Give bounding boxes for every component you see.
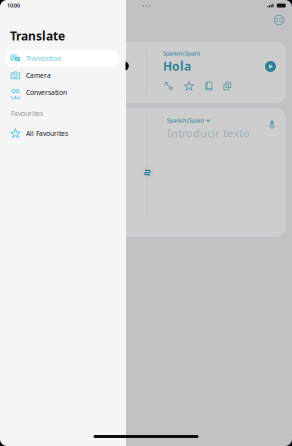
button[interactable]: Add to favourites [184,81,194,91]
button[interactable]: All Favourites [0,125,126,142]
button[interactable]: Swap languages [140,165,155,180]
staticText: All Favourites [26,129,68,138]
button[interactable]: Translation language [274,15,284,25]
button[interactable]: Translation [0,50,126,67]
button[interactable]: Dictate [268,120,276,130]
staticText: Hola [163,58,191,74]
button[interactable]: Conversation [0,84,126,101]
staticText: Conversation [26,88,67,97]
button[interactable]: Dictionary [205,81,213,90]
button[interactable]: Copy [223,81,232,90]
button[interactable]: Play translation [265,61,276,72]
staticText: Camera [26,71,51,80]
button[interactable]: Camera [0,67,126,84]
staticText: Translation [26,54,61,63]
button[interactable]: Expand [164,81,173,90]
staticText: Favourites [11,109,43,118]
staticText: Introducir texto [167,126,250,140]
staticText: Translate [10,28,65,44]
staticText: Spanish (Spain) [167,117,204,124]
staticText: 10:00 [7,2,20,9]
staticText: Spanish (Spain) [163,50,200,57]
